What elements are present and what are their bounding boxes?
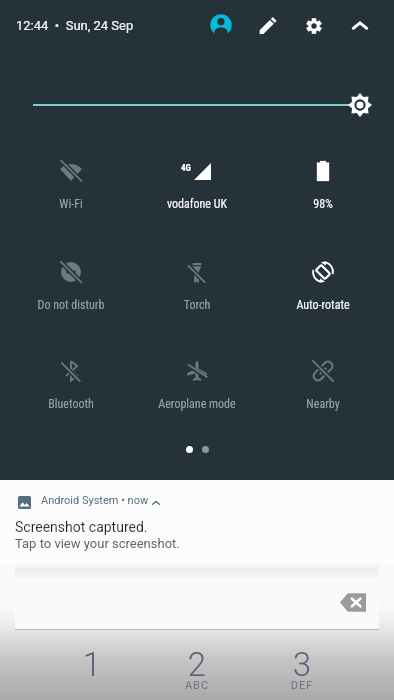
- button[interactable]: Collapse quick settings: [343, 9, 377, 43]
- button[interactable]: Aeroplane mode: [134, 349, 260, 407]
- button[interactable]: Wi-Fi: [8, 149, 134, 207]
- button[interactable]: 3: [250, 630, 354, 700]
- staticText: ABC: [145, 679, 249, 692]
- button[interactable]: User account: [204, 8, 238, 42]
- staticText: Tap to view your screenshot.: [15, 536, 180, 551]
- staticText: 98%: [260, 197, 386, 211]
- staticText: Bluetooth: [8, 397, 134, 411]
- button[interactable]: Auto-rotate: [260, 250, 386, 308]
- staticText: 4G: [181, 163, 191, 174]
- staticText: 1: [40, 645, 144, 684]
- staticText: DEF: [250, 679, 354, 692]
- staticText: 3: [250, 645, 354, 684]
- staticText: Do not disturb: [8, 298, 134, 312]
- staticText: Nearby: [260, 397, 386, 411]
- button[interactable]: Torch: [134, 250, 260, 308]
- button[interactable]: Brightness: [0, 87, 394, 123]
- button[interactable]: Android System • now: [0, 480, 394, 512]
- staticText: Android System • now: [41, 494, 149, 507]
- staticText: Wi-Fi: [8, 197, 134, 211]
- button[interactable]: Backspace: [340, 592, 366, 613]
- button[interactable]: Nearby: [260, 349, 386, 407]
- staticText: 2: [145, 645, 249, 684]
- button[interactable]: 2: [145, 630, 249, 700]
- staticText: 12:44 • Sun, 24 Sep: [16, 18, 134, 33]
- button[interactable]: Bluetooth: [8, 349, 134, 407]
- button[interactable]: Edit: [251, 8, 285, 42]
- button[interactable]: Do not disturb: [8, 250, 134, 308]
- staticText: Aeroplane mode: [134, 397, 260, 411]
- staticText: vodafone UK: [134, 197, 260, 211]
- button[interactable]: Settings: [297, 9, 331, 43]
- button[interactable]: 1: [40, 630, 144, 700]
- button[interactable]: 98%: [260, 149, 386, 207]
- staticText: Screenshot captured.: [15, 519, 148, 535]
- staticText: Auto-rotate: [260, 298, 386, 312]
- staticText: Torch: [134, 298, 260, 312]
- button[interactable]: vodafone UK: [134, 149, 260, 207]
